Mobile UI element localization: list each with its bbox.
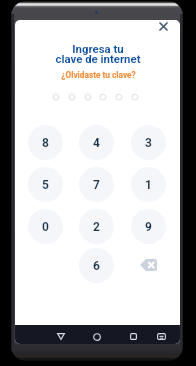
staticText: 7 [93,178,100,192]
staticText: 3 [145,136,152,150]
button[interactable]: 7 [79,167,114,202]
button[interactable]: Back [51,327,70,346]
staticText: 5 [42,178,49,192]
button[interactable]: Home [87,327,106,346]
button[interactable]: 9 [131,209,166,244]
staticText: 2 [93,220,100,234]
staticText: 8 [42,136,49,150]
button[interactable]: Recents [124,327,143,346]
button[interactable]: ¿Olvidaste tu clave? [55,70,141,80]
staticText: 4 [93,136,100,150]
staticText: 1 [145,178,152,192]
staticText: 6 [93,259,100,273]
button[interactable]: 2 [79,209,114,244]
staticText: ¿Olvidaste tu clave? [61,70,136,80]
button[interactable]: 1 [131,167,166,202]
button[interactable]: 8 [28,125,63,160]
button[interactable]: 0 [28,209,63,244]
button[interactable]: Cerrar [154,17,173,36]
button[interactable]: 4 [79,125,114,160]
button[interactable]: 3 [131,125,166,160]
staticText: 0 [42,220,49,234]
staticText: 9 [145,220,152,234]
button[interactable]: 5 [28,167,63,202]
staticText: Ingresa tu clave de internet [55,42,141,66]
button[interactable]: 6 [79,248,114,283]
button[interactable]: Teclado [152,327,171,346]
button[interactable]: Borrar [131,247,166,282]
